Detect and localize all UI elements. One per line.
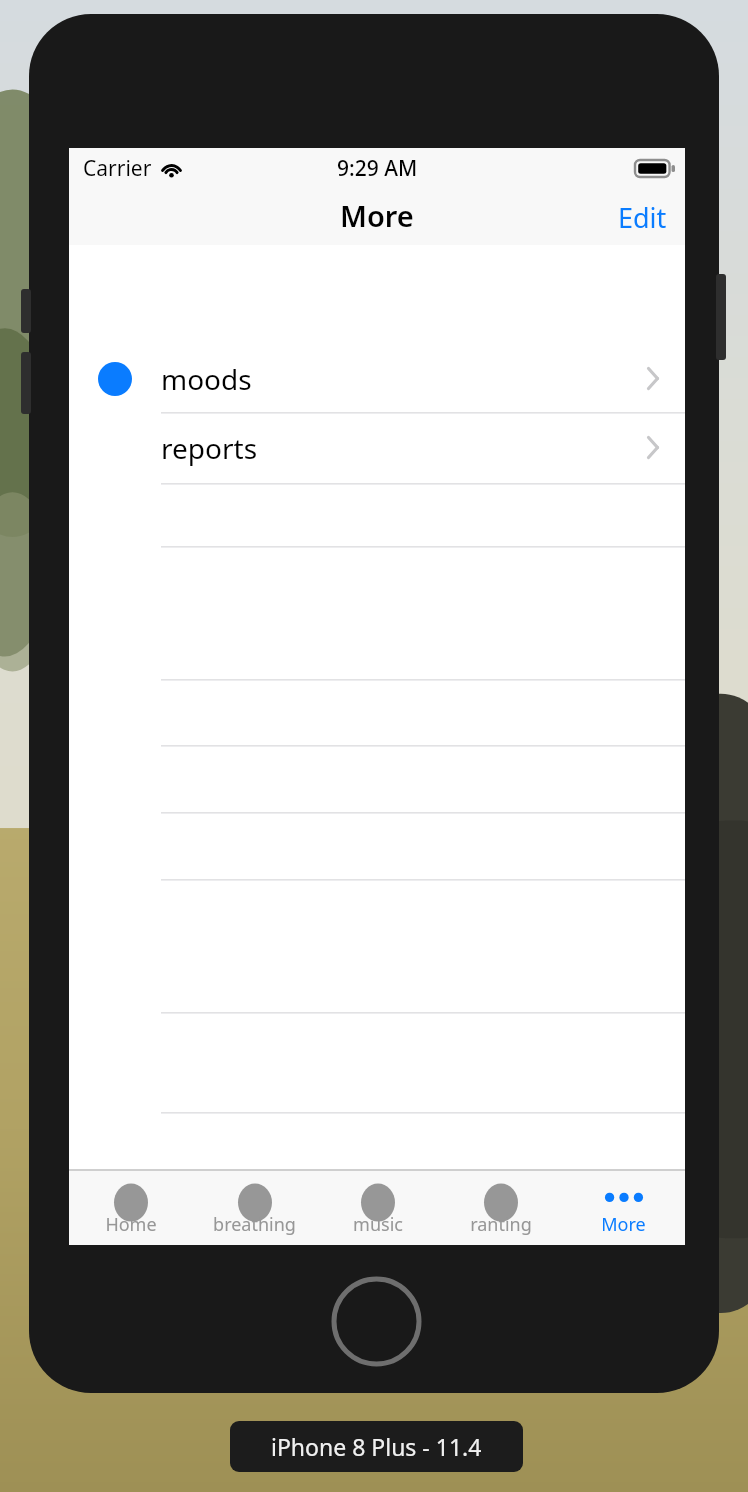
staticText: More (601, 1212, 646, 1237)
staticText: Edit (618, 199, 667, 234)
staticText: More (340, 196, 414, 235)
staticText: Carrier (83, 154, 152, 183)
button[interactable]: reports (69, 413, 685, 482)
button[interactable]: ranting (439, 1171, 562, 1245)
staticText: breathing (213, 1212, 296, 1237)
button[interactable]: breathing (193, 1171, 316, 1245)
staticText: reports (161, 429, 258, 467)
staticText: 9:29 AM (337, 154, 418, 183)
other: Open moods (645, 365, 661, 392)
button[interactable]: moods (69, 345, 685, 412)
other: Open reports (645, 434, 661, 461)
staticText: Home (105, 1212, 157, 1237)
staticText: iPhone 8 Plus - 11.4 (271, 1431, 482, 1462)
staticText: moods (161, 360, 252, 398)
staticText: ranting (470, 1212, 532, 1237)
button[interactable]: music (316, 1171, 439, 1245)
staticText: music (353, 1212, 403, 1237)
button[interactable]: Home (69, 1171, 193, 1245)
button[interactable]: More (562, 1171, 685, 1245)
button[interactable]: Edit (600, 188, 685, 245)
